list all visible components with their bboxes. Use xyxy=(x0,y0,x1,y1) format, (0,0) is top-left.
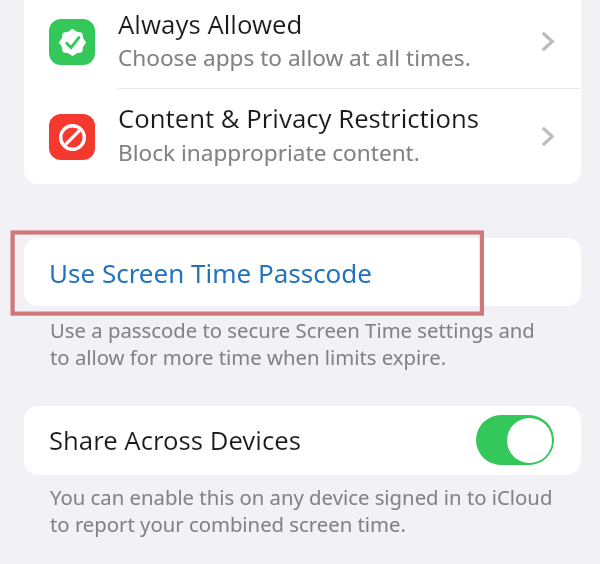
staticText: Use Screen Time Passcode xyxy=(49,255,372,290)
staticText: Choose apps to allow at all times. xyxy=(118,42,471,73)
button[interactable]: Use Screen Time Passcode xyxy=(24,238,581,306)
button[interactable]: Always Allowed xyxy=(24,0,581,88)
staticText: You can enable this on any device signed… xyxy=(50,483,553,538)
button[interactable]: Content & Privacy Restrictions xyxy=(24,88,581,184)
staticText: Share Across Devices xyxy=(49,423,301,458)
button[interactable]: Share Across Devices, on xyxy=(476,415,554,465)
staticText: Always Allowed xyxy=(118,7,303,42)
staticText: Content & Privacy Restrictions xyxy=(118,101,479,136)
staticText: Use a passcode to secure Screen Time set… xyxy=(50,316,535,371)
staticText: Block inappropriate content. xyxy=(118,137,420,168)
